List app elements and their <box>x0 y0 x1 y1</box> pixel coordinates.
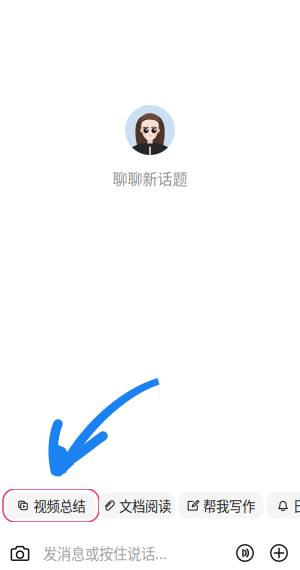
staticText: 视频总结 <box>33 496 85 515</box>
staticText: 日历 <box>293 496 300 515</box>
button[interactable]: 文档阅读 <box>95 489 178 522</box>
button[interactable]: 帮我写作 <box>175 489 267 522</box>
staticText: 聊聊新话题 <box>112 167 187 189</box>
staticText: 发消息或按住说话... <box>43 543 167 563</box>
button[interactable]: 日历 <box>263 489 300 522</box>
button[interactable]: 视频总结 <box>3 489 99 522</box>
staticText: 帮我写作 <box>203 496 255 515</box>
staticText: 文档阅读 <box>119 496 171 515</box>
button[interactable]: Voice input <box>236 544 254 562</box>
button[interactable]: Camera <box>10 544 30 562</box>
button[interactable]: More options <box>270 544 288 562</box>
